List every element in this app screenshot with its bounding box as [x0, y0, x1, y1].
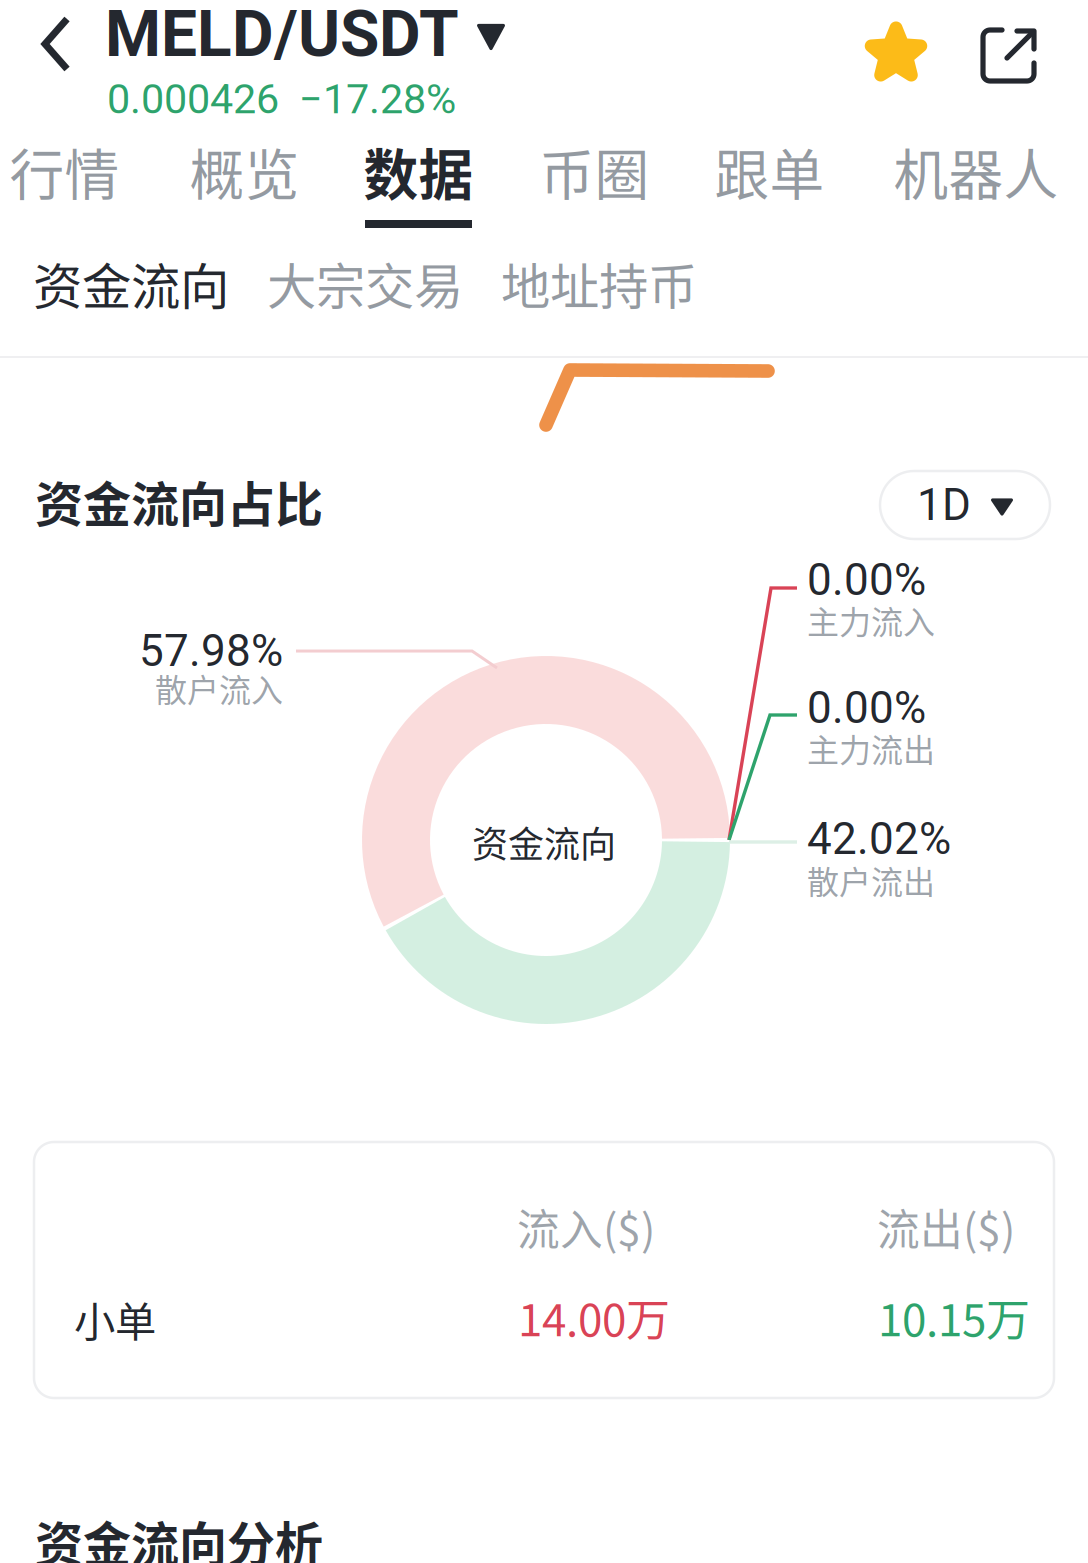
staticText: 42.02% — [807, 813, 951, 865]
staticText: 机器人 — [893, 131, 1058, 211]
staticText: 0.00% — [807, 554, 926, 606]
staticText: 概览 — [189, 131, 299, 211]
staticText: 10.15万 — [878, 1285, 1030, 1349]
button[interactable]: 概览 — [191, 122, 298, 234]
staticText: 主力流出 — [807, 725, 935, 771]
button[interactable]: 行情 — [11, 122, 118, 234]
staticText: 资金流向 — [472, 816, 616, 868]
button[interactable]: Back — [10, 0, 106, 92]
staticText: 14.00万 — [518, 1285, 670, 1349]
button[interactable]: 跟单 — [716, 122, 823, 234]
button[interactable]: MELD/USDT — [105, 4, 515, 64]
button[interactable]: Favourite — [850, 8, 942, 100]
staticText: 行情 — [9, 131, 119, 211]
button[interactable]: 大宗交易 — [267, 234, 467, 332]
staticText: 流出($) — [877, 1196, 1015, 1258]
staticText: 1D — [917, 479, 971, 531]
button[interactable]: 机器人 — [895, 122, 1057, 234]
staticText: 资金流向占比 — [35, 466, 323, 536]
button[interactable]: Share — [963, 10, 1055, 102]
staticText: 57.98% — [139, 625, 283, 677]
staticText: 地址持币 — [501, 247, 697, 319]
staticText: 小单 — [74, 1289, 156, 1349]
staticText: 资金流向分析 — [35, 1506, 323, 1563]
button[interactable]: 币圈 — [541, 122, 648, 234]
staticText: 资金流向 — [33, 247, 229, 319]
staticText: MELD/USDT — [105, 0, 459, 71]
button[interactable]: 资金流向 — [33, 234, 233, 332]
button[interactable]: 1D — [880, 471, 1050, 539]
staticText: 主力流入 — [807, 597, 935, 643]
staticText: 散户流出 — [807, 857, 935, 903]
staticText: 0.000426 −17.28% — [107, 75, 456, 123]
staticText: 0.00% — [807, 682, 926, 734]
button[interactable]: 数据 — [365, 122, 472, 234]
button[interactable]: 地址持币 — [501, 234, 701, 332]
staticText: 数据 — [363, 131, 473, 211]
staticText: 币圈 — [539, 131, 649, 211]
staticText: 大宗交易 — [267, 247, 463, 319]
staticText: 跟单 — [714, 131, 824, 211]
staticText: 流入($) — [517, 1196, 655, 1258]
staticText: 散户流入 — [155, 665, 283, 711]
